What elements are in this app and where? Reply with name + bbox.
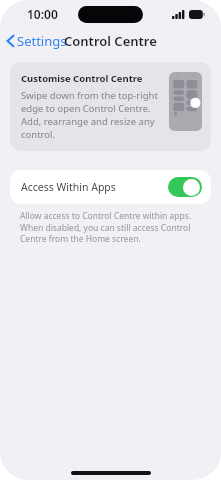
staticText: Settings [17,32,67,50]
staticText: Control Centre [64,32,157,50]
button[interactable]: Access Within Apps toggle, on [168,177,202,197]
staticText: Customise Control Centre [21,72,143,85]
button[interactable]: Settings [0,29,73,53]
button[interactable]: Customise Control Centre [10,62,211,151]
staticText: Allow access to Control Centre within ap… [20,210,203,245]
staticText: 10:00 [27,6,58,22]
staticText: Access Within Apps [21,180,168,194]
button[interactable]: Access Within Apps [10,170,211,204]
staticText: Swipe down from the top-right edge to op… [21,89,163,141]
